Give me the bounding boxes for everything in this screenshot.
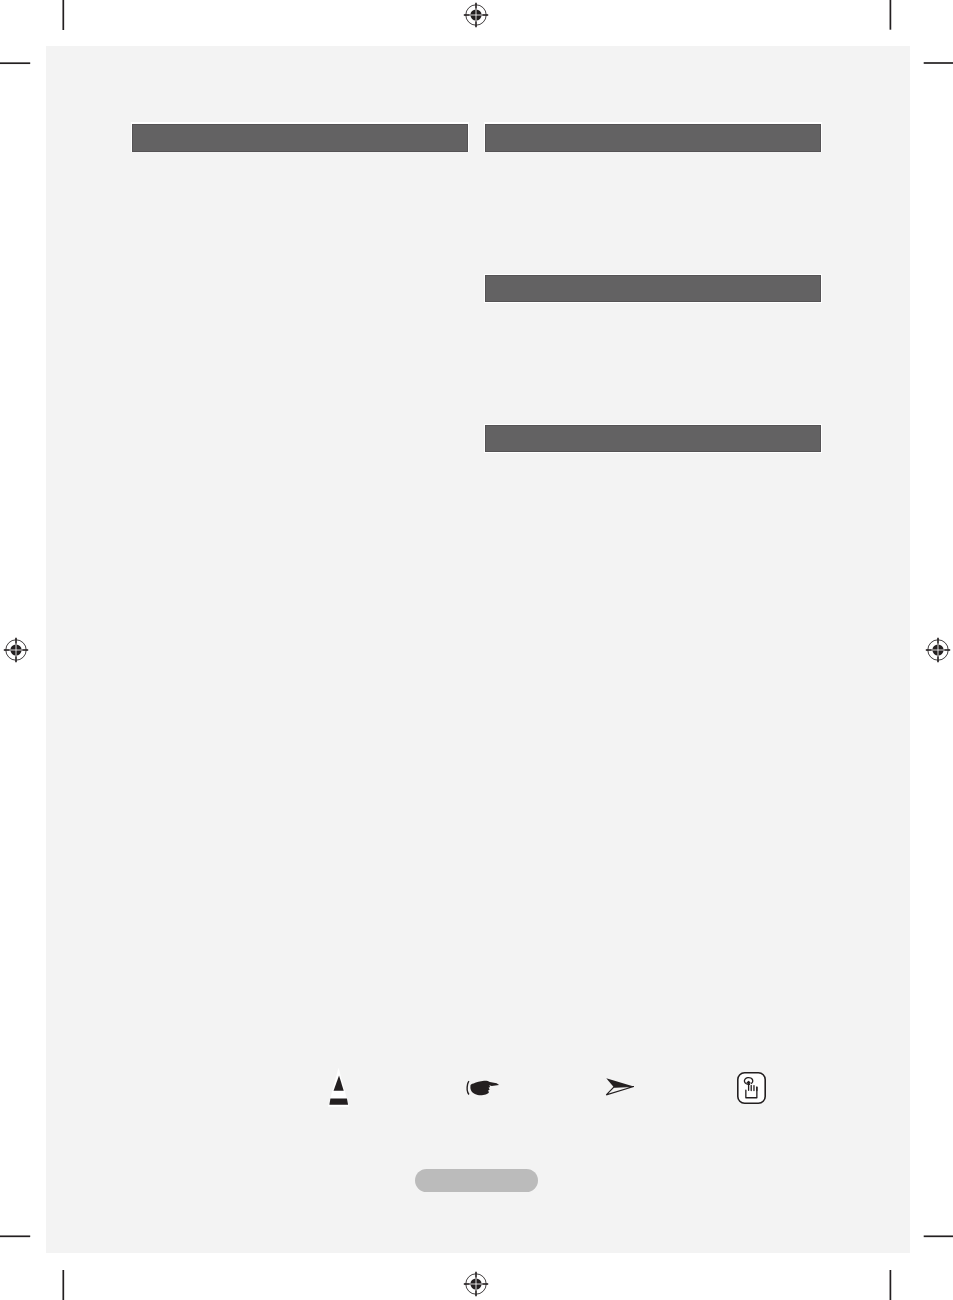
button[interactable]: Section heading 4 <box>485 425 821 452</box>
button[interactable]: Section heading 1 <box>132 124 468 152</box>
button[interactable]: Pointing hand <box>466 1078 501 1097</box>
button[interactable]: Section heading 3 <box>485 275 821 302</box>
button[interactable]: Caution <box>328 1067 349 1107</box>
button[interactable]: Home indicator <box>415 1169 538 1192</box>
button[interactable]: Tap <box>737 1072 766 1104</box>
button[interactable]: Section heading 2 <box>485 124 821 152</box>
button[interactable]: Send <box>606 1078 634 1095</box>
